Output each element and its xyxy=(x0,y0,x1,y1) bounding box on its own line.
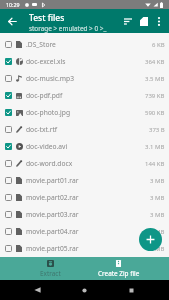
button[interactable]: Sort xyxy=(120,9,136,33)
button[interactable]: Navigate up xyxy=(0,9,25,33)
button[interactable]: Home xyxy=(74,280,94,300)
staticText: 3 MB xyxy=(150,228,165,236)
button[interactable]: doc-pdf.pdf xyxy=(0,87,169,104)
staticText: movie.part05.rar xyxy=(26,244,150,253)
button[interactable]: doc-photo.jpg xyxy=(0,104,169,121)
staticText: 3 MB xyxy=(150,245,165,253)
staticText: doc-music.mp3 xyxy=(26,74,145,83)
staticText: doc-excel.xls xyxy=(26,57,145,66)
button[interactable]: doc-word.docx xyxy=(0,155,169,172)
staticText: Create Zip file xyxy=(98,269,140,278)
staticText: 739 KB xyxy=(145,92,165,100)
button[interactable]: Add xyxy=(139,228,162,251)
button[interactable]: movie.part02.rar xyxy=(0,189,169,206)
staticText: 3.5 MB xyxy=(145,75,165,83)
button[interactable]: movie.part03.rar xyxy=(0,206,169,223)
button[interactable]: .DS_Store xyxy=(0,36,169,53)
staticText: 3 MB xyxy=(150,194,165,202)
staticText: 10:29 xyxy=(6,1,20,8)
button[interactable]: More options xyxy=(152,9,169,33)
button[interactable]: Back xyxy=(27,280,47,300)
staticText: Test files xyxy=(29,12,65,24)
staticText: 6 KB xyxy=(152,41,165,49)
button[interactable]: Create Zip file xyxy=(84,257,153,280)
button[interactable]: Recents xyxy=(121,280,141,300)
staticText: 364 KB xyxy=(145,58,165,66)
button[interactable]: Extract xyxy=(16,257,84,280)
staticText: movie.part01.rar xyxy=(26,176,150,185)
button[interactable]: doc-music.mp3 xyxy=(0,70,169,87)
staticText: 144 KB xyxy=(145,160,165,168)
staticText: doc-pdf.pdf xyxy=(26,91,145,100)
staticText: movie.part02.rar xyxy=(26,193,150,202)
staticText: .DS_Store xyxy=(26,40,152,49)
staticText: 3 MB xyxy=(150,211,165,219)
staticText: storage > emulated > 0 >_ xyxy=(29,24,107,33)
button[interactable]: doc-txt.rtf xyxy=(0,121,169,138)
staticText: 3.1 MB xyxy=(145,143,165,151)
staticText: movie.part04.rar xyxy=(26,227,150,236)
staticText: 3 MB xyxy=(150,177,165,185)
staticText: doc-video.avi xyxy=(26,142,145,151)
button[interactable]: movie.part05.rar xyxy=(0,240,169,257)
button[interactable]: doc-excel.xls xyxy=(0,53,169,70)
staticText: Extract xyxy=(40,269,61,278)
button[interactable]: movie.part04.rar xyxy=(0,223,169,240)
button[interactable]: Storage xyxy=(136,9,152,33)
button[interactable]: movie.part01.rar xyxy=(0,172,169,189)
staticText: doc-word.docx xyxy=(26,159,145,168)
staticText: 373 B xyxy=(149,126,165,134)
staticText: doc-photo.jpg xyxy=(26,108,145,117)
button[interactable]: doc-video.avi xyxy=(0,138,169,155)
staticText: 590 KB xyxy=(145,109,165,117)
staticText: movie.part03.rar xyxy=(26,210,150,219)
staticText: doc-txt.rtf xyxy=(26,125,149,134)
